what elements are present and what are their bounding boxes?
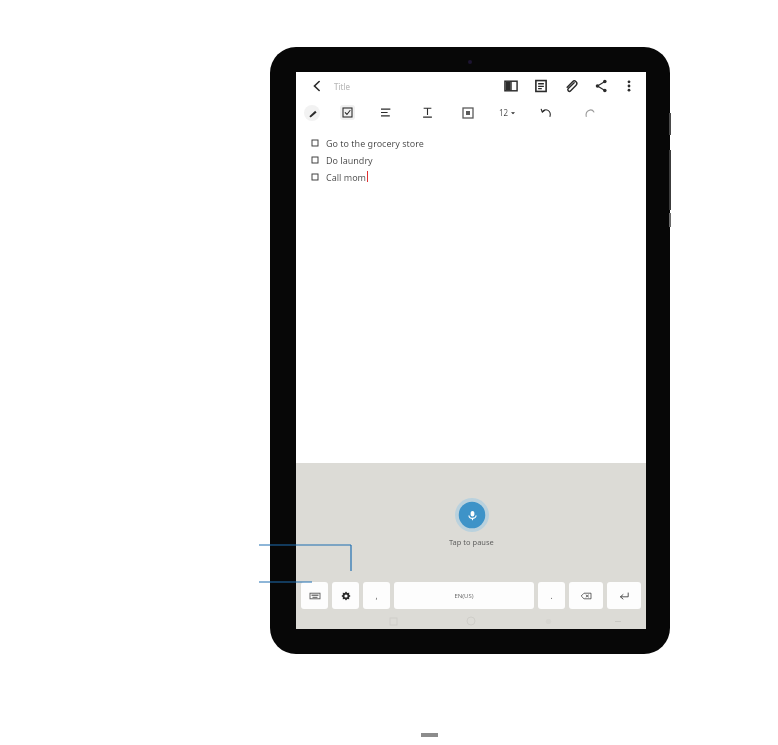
button[interactable]: Enter: [607, 582, 641, 609]
button[interactable]: .: [538, 582, 565, 609]
button[interactable]: Keyboard settings: [332, 582, 359, 609]
button[interactable]: More options: [620, 77, 638, 95]
button[interactable]: Back: [306, 75, 328, 97]
button[interactable]: 12: [499, 107, 515, 118]
button[interactable]: Do laundry: [312, 151, 646, 168]
button[interactable]: Pen: [304, 105, 320, 121]
button[interactable]: Recents: [390, 618, 397, 625]
button[interactable]: Tap to pause: [455, 498, 489, 532]
staticText: Tap to pause: [449, 537, 494, 547]
staticText: Title: [334, 81, 350, 92]
staticText: 12: [499, 107, 509, 118]
button[interactable]: Text style: [420, 105, 435, 120]
button[interactable]: Share: [591, 76, 611, 96]
button[interactable]: Switch keyboard: [301, 582, 328, 609]
button[interactable]: Page style: [531, 76, 551, 96]
button[interactable]: Checklist: [340, 105, 355, 120]
button[interactable]: View mode: [501, 76, 521, 96]
staticText: ,: [375, 590, 378, 601]
staticText: Do laundry: [326, 154, 373, 166]
button[interactable]: Call mom: [312, 168, 646, 185]
button[interactable]: Paragraph: [379, 105, 394, 120]
staticText: Go to the grocery store: [326, 137, 424, 149]
button[interactable]: Undo: [539, 105, 554, 120]
button[interactable]: Redo: [582, 105, 597, 120]
button[interactable]: Backspace: [569, 582, 603, 609]
button[interactable]: Go to the grocery store: [312, 134, 646, 151]
button[interactable]: Attach: [561, 76, 581, 96]
button[interactable]: ,: [363, 582, 390, 609]
button[interactable]: Home: [467, 617, 475, 625]
button[interactable]: Highlight: [461, 106, 475, 120]
staticText: Call mom: [326, 171, 366, 183]
staticText: .: [550, 590, 553, 601]
button[interactable]: EN(US): [394, 582, 534, 609]
staticText: EN(US): [454, 592, 474, 600]
